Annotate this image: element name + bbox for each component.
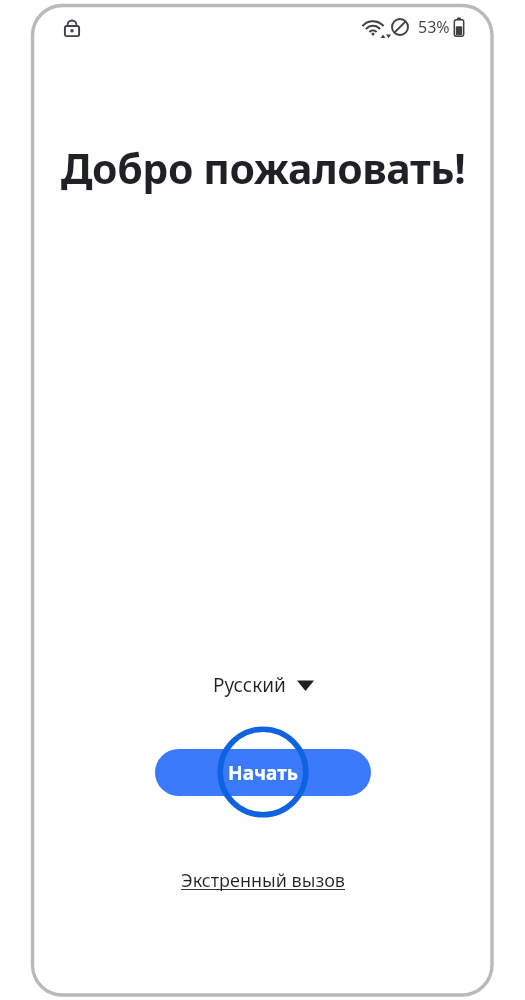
staticText: Добро пожаловать!	[34, 140, 492, 196]
staticText: Начать	[228, 760, 299, 786]
staticText: Русский	[213, 672, 286, 698]
button[interactable]: Начать	[155, 749, 371, 796]
staticText: 53%	[418, 16, 450, 38]
button[interactable]: Русский	[203, 666, 324, 704]
button[interactable]: Экстренный вызов	[169, 862, 358, 899]
staticText: Экстренный вызов	[181, 868, 346, 893]
